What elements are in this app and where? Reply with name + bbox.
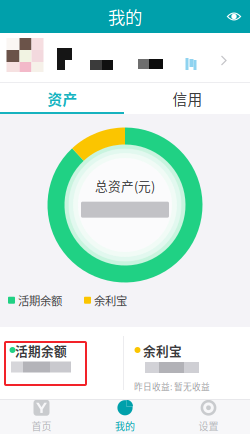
button[interactable] <box>0 33 250 83</box>
button[interactable]: 资产 <box>0 83 125 114</box>
button[interactable]: 余利宝 <box>125 327 250 399</box>
button[interactable]: 我的 <box>83 399 167 434</box>
staticText: 首页 <box>31 419 51 433</box>
button[interactable]: 首页 <box>0 399 83 434</box>
staticText: 活期余额 <box>18 292 62 308</box>
button[interactable]: 设置 <box>167 399 250 434</box>
staticText: 信用 <box>172 88 202 109</box>
button[interactable]: 活期余额 <box>0 327 125 399</box>
staticText: 余利宝 <box>143 341 182 360</box>
staticText: 昨日收益: 暂无收益 <box>134 380 210 393</box>
staticText: 设置 <box>198 419 218 433</box>
button[interactable]: Toggle balance visibility <box>218 0 250 33</box>
staticText: 活期余额 <box>15 341 67 360</box>
staticText: 我的 <box>108 4 142 29</box>
staticText: 余利宝 <box>94 292 127 308</box>
staticText: 资产 <box>47 88 77 109</box>
button[interactable]: 信用 <box>125 83 250 114</box>
staticText: 我的 <box>115 419 135 433</box>
staticText: 总资产(元) <box>95 176 155 195</box>
